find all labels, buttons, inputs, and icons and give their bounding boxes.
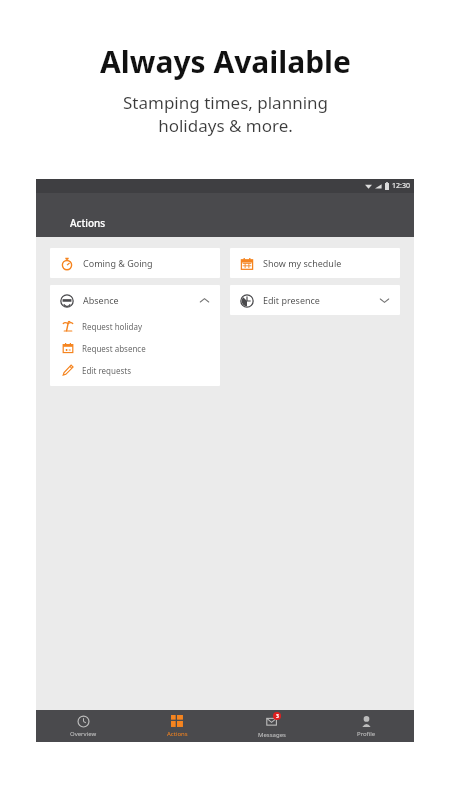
staticText: Stamping times, planning holidays & more… xyxy=(123,91,328,137)
button[interactable]: Show my schedule xyxy=(230,248,400,278)
staticText: Show my schedule xyxy=(263,257,391,269)
staticText: Edit presence xyxy=(263,294,377,306)
staticText: Overview xyxy=(70,730,97,738)
button[interactable]: Actions xyxy=(130,710,224,742)
staticText: Request absence xyxy=(82,343,146,354)
staticText: Absence xyxy=(83,294,197,306)
button[interactable]: Edit requests xyxy=(50,359,220,381)
staticText: 3 xyxy=(276,713,279,720)
staticText: 12:30 xyxy=(392,181,410,191)
staticText: Always Available xyxy=(100,41,351,82)
staticText: Actions xyxy=(70,216,106,230)
staticText: Request holiday xyxy=(82,321,143,332)
staticText: Messages xyxy=(258,731,286,739)
button[interactable]: Request holiday xyxy=(50,315,220,337)
staticText: Edit requests xyxy=(82,365,131,376)
staticText: Profile xyxy=(357,730,376,738)
staticText: Coming & Going xyxy=(83,257,211,269)
button[interactable]: Profile xyxy=(319,710,414,742)
button[interactable]: Edit presence xyxy=(230,285,400,315)
staticText: Actions xyxy=(167,730,188,738)
button[interactable]: Messages xyxy=(224,710,319,742)
button[interactable]: Request absence xyxy=(50,337,220,359)
button[interactable]: Coming & Going xyxy=(50,248,220,278)
button[interactable]: Absence xyxy=(50,285,220,315)
button[interactable]: Overview xyxy=(36,710,130,742)
